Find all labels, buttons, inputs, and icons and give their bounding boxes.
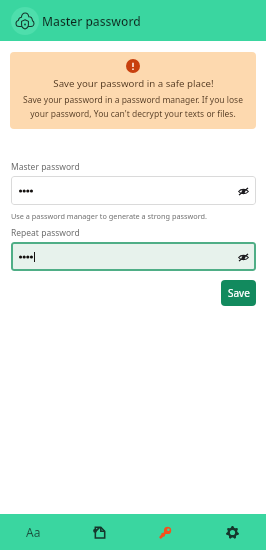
staticText: Repeat password (11, 227, 80, 239)
button[interactable]: Passwords (132, 514, 199, 550)
staticText: Save (228, 286, 250, 300)
button[interactable]: Show password (235, 183, 251, 199)
staticText: Use a password manager to generate a str… (11, 211, 207, 221)
button[interactable]: Show password (11, 242, 256, 271)
button[interactable]: Show password (235, 249, 251, 265)
button[interactable]: Aa (0, 514, 66, 550)
button[interactable]: Settings (199, 514, 266, 550)
staticText: Master password (42, 13, 141, 29)
staticText: Save your password in a password manager… (21, 94, 245, 119)
button[interactable]: Files (66, 514, 132, 550)
staticText: Aa (26, 524, 41, 540)
staticText: Save your password in a safe place! (53, 77, 214, 90)
staticText: Master password (11, 161, 80, 173)
button[interactable]: Save (221, 280, 256, 306)
button[interactable]: Show password (11, 176, 256, 205)
